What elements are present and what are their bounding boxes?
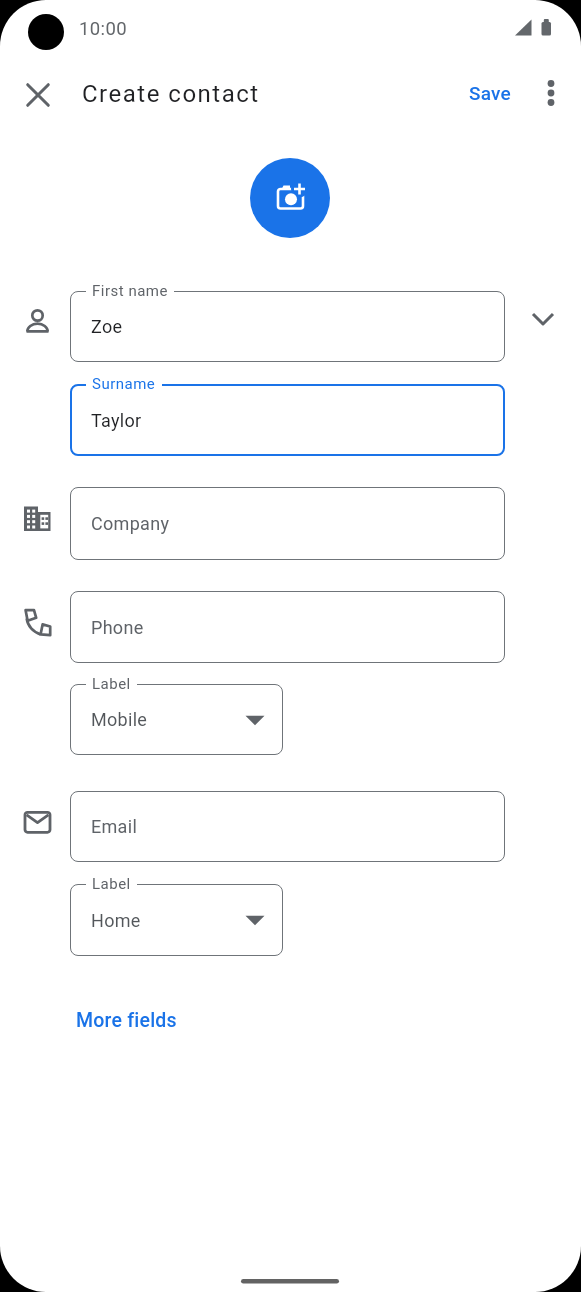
staticText: Email [91,816,138,837]
staticText: Taylor [91,410,142,431]
staticText: Save [469,82,511,104]
button[interactable]: Mobile [70,684,283,755]
staticText: 10:00 [79,18,128,40]
staticText: Zoe [91,316,123,337]
button[interactable]: Phone [70,591,505,663]
staticText: Label [92,675,131,693]
button[interactable]: Home [70,884,283,956]
button[interactable]: Company [70,487,505,560]
button[interactable]: Taylor [70,384,505,456]
staticText: Surname [92,375,156,393]
button[interactable]: Email [70,791,505,862]
staticText: First name [92,282,168,300]
staticText: Label [92,875,131,893]
button[interactable]: Zoe [70,291,505,362]
button[interactable]: Save [458,74,522,112]
staticText: Create contact [82,80,260,108]
staticText: More fields [76,1009,177,1032]
button[interactable] [536,75,566,111]
button[interactable]: More fields [62,1000,190,1040]
button[interactable] [250,158,330,238]
staticText: Mobile [91,709,148,730]
button[interactable] [20,77,56,113]
staticText: Home [91,910,141,931]
staticText: Company [91,513,170,534]
staticText: Phone [91,617,144,638]
